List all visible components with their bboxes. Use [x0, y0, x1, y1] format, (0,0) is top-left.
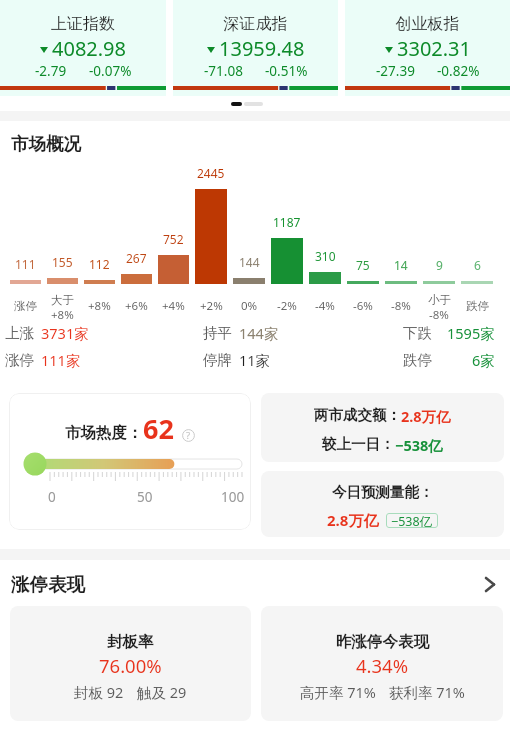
staticText: 112	[89, 256, 110, 272]
staticText: −538亿	[391, 513, 433, 528]
staticText: 144	[239, 254, 260, 270]
staticText: 752	[163, 231, 184, 247]
staticText: 触及 29	[137, 682, 187, 702]
staticText: -2.79	[35, 62, 67, 80]
staticText: 1187	[273, 214, 301, 230]
staticText: 1595家	[447, 323, 495, 343]
staticText: 大于	[51, 293, 74, 307]
staticText: 高开率 71%	[300, 682, 376, 702]
staticText: 50	[137, 488, 153, 506]
staticText: 4.34%	[356, 653, 409, 678]
staticText: 100	[221, 488, 245, 506]
staticText: 跌停	[466, 299, 489, 313]
staticText: 6	[474, 257, 481, 273]
staticText: +8%	[88, 298, 111, 314]
staticText: +4%	[162, 298, 185, 314]
staticText: +8%	[51, 307, 74, 319]
staticText: 2.8万亿	[327, 510, 379, 530]
staticText: 4082.98	[52, 35, 126, 62]
staticText: 上证指数	[0, 14, 166, 34]
staticText: +2%	[200, 298, 223, 314]
staticText: 上涨	[5, 324, 34, 342]
staticText: 市场热度：	[65, 423, 143, 443]
staticText: -8%	[391, 298, 411, 314]
button[interactable]: 市场热度：	[9, 393, 251, 530]
staticText: -2%	[277, 298, 297, 314]
staticText: 持平	[203, 324, 232, 342]
staticText: 62	[143, 410, 174, 447]
staticText: 3302.31	[397, 35, 471, 62]
staticText: 75	[356, 257, 370, 273]
button[interactable]: 昨涨停今表现	[261, 606, 503, 721]
staticText: 0%	[241, 298, 258, 314]
staticText: 9	[436, 257, 443, 273]
staticText: -6%	[353, 298, 373, 314]
staticText: -71.08	[204, 62, 243, 80]
button[interactable]: 创业板指	[345, 0, 510, 96]
staticText: 111	[15, 256, 36, 272]
staticText: -0.07%	[89, 62, 132, 80]
staticText: 310	[315, 248, 336, 264]
button[interactable]: 两市成交额：	[261, 393, 504, 462]
other: More	[485, 576, 496, 593]
staticText: 两市成交额：	[314, 406, 401, 424]
staticText: 获利率 71%	[389, 682, 465, 702]
staticText: 深证成指	[173, 14, 338, 34]
staticText: 涨停	[5, 351, 34, 369]
staticText: 昨涨停今表现	[336, 632, 429, 652]
staticText: 3731家	[41, 323, 89, 343]
staticText: 76.00%	[99, 653, 162, 678]
staticText: 跌停	[403, 351, 432, 369]
staticText: -4%	[315, 298, 335, 314]
staticText: 较上一日：	[322, 435, 395, 453]
staticText: 0	[48, 488, 56, 506]
staticText: 涨停表现	[11, 573, 85, 596]
staticText: 封板率	[107, 632, 154, 652]
staticText: 今日预测量能：	[332, 483, 434, 501]
staticText: 2.8万亿	[401, 406, 451, 426]
staticText: 涨停	[14, 299, 37, 313]
staticText: 市场概况	[11, 133, 81, 155]
staticText: -8%	[429, 307, 449, 319]
staticText: 封板 92	[74, 682, 124, 702]
staticText: 144家	[239, 323, 279, 343]
button[interactable]: 今日预测量能：	[261, 471, 504, 537]
staticText: 111家	[41, 350, 81, 370]
button[interactable]: 深证成指	[173, 0, 338, 96]
staticText: 14	[394, 257, 408, 273]
staticText: 下跌	[403, 324, 432, 342]
staticText: −538亿	[395, 435, 443, 455]
staticText: -0.82%	[437, 62, 480, 80]
button[interactable]: 封板率	[10, 606, 251, 721]
staticText: 2445	[197, 165, 225, 181]
staticText: ?	[186, 429, 191, 442]
button[interactable]: 涨停表现	[11, 573, 496, 596]
button[interactable]: 上证指数	[0, 0, 166, 96]
staticText: 小于	[428, 293, 451, 307]
staticText: 267	[126, 250, 147, 266]
staticText: 创业板指	[345, 14, 510, 34]
staticText: +6%	[125, 298, 148, 314]
staticText: -0.51%	[265, 62, 308, 80]
staticText: 13959.48	[219, 35, 305, 62]
staticText: 6家	[472, 350, 495, 370]
staticText: 停牌	[203, 351, 232, 369]
staticText: 11家	[239, 350, 271, 370]
staticText: 155	[52, 254, 73, 270]
staticText: -27.39	[376, 62, 415, 80]
